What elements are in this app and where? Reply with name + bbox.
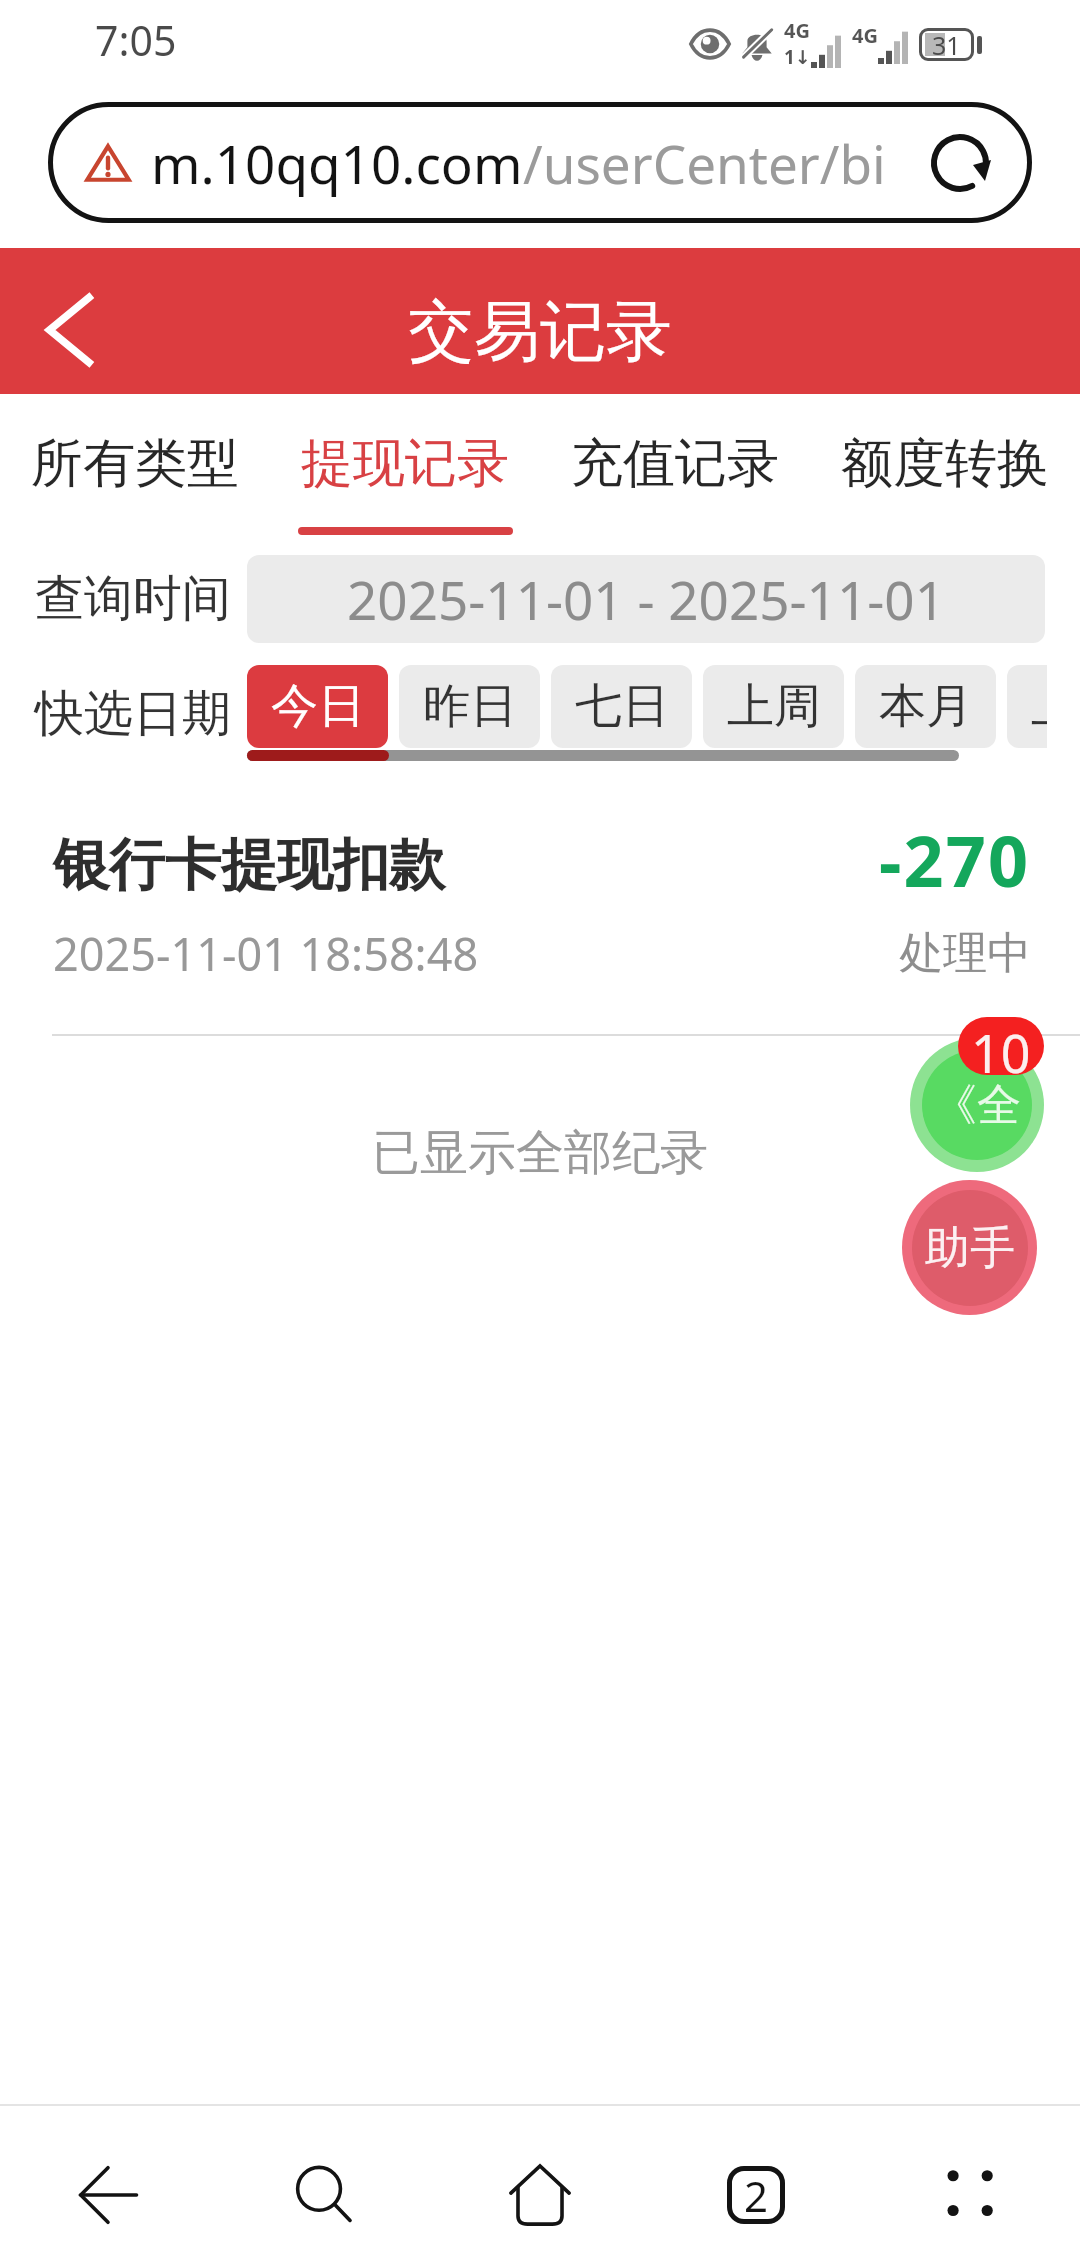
staticText: 4G	[784, 17, 810, 44]
staticText: 上周	[727, 677, 821, 736]
staticText: 所有类型	[31, 431, 239, 497]
button[interactable]: 本月	[855, 665, 996, 748]
staticText: 快选日期	[35, 683, 231, 745]
staticText: m.10qq10.com	[151, 127, 523, 199]
staticText: 今日	[271, 677, 365, 736]
staticText: 上	[1031, 677, 1047, 736]
staticText: 七日	[575, 677, 669, 736]
button[interactable]: 上周	[703, 665, 844, 748]
button[interactable]: Search	[216, 2124, 432, 2266]
staticText: 查询时间	[35, 568, 231, 630]
staticText: 7:05	[95, 12, 177, 68]
staticText: -270	[879, 812, 1031, 907]
button[interactable]: 额度转换	[810, 394, 1080, 546]
staticText: 4G	[852, 22, 878, 49]
staticText: /userCenter/bi	[523, 127, 886, 199]
staticText: 2025-11-01 - 2025-11-01	[347, 563, 945, 635]
button[interactable]: m.10qq10.com	[48, 102, 1032, 223]
button[interactable]: 上	[1007, 665, 1047, 748]
staticText: 充值记录	[571, 431, 779, 497]
staticText: 提现记录	[301, 431, 509, 497]
button[interactable]: 银行卡提现扣款	[0, 818, 1080, 984]
staticText: 已显示全部纪录	[0, 1123, 1080, 1183]
button[interactable]: Back	[43, 293, 93, 367]
staticText: 处理中	[899, 926, 1031, 981]
staticText: 2	[744, 2167, 769, 2224]
staticText: 10	[971, 1017, 1031, 1075]
button[interactable]: More	[864, 2124, 1080, 2266]
button[interactable]: 今日	[247, 665, 388, 748]
staticText: 《全	[933, 1078, 1021, 1133]
staticText: 31	[932, 28, 961, 61]
staticText: 交易记录	[408, 290, 672, 373]
button[interactable]: 充值记录	[540, 394, 810, 546]
button[interactable]: 2025-11-01 - 2025-11-01	[247, 555, 1045, 643]
staticText: 银行卡提现扣款	[53, 830, 445, 901]
staticText: 1↓	[784, 44, 811, 70]
staticText: 助手	[925, 1220, 1015, 1277]
staticText: 昨日	[423, 677, 517, 736]
staticText: 本月	[879, 677, 973, 736]
button[interactable]: 七日	[551, 665, 692, 748]
button[interactable]: 所有类型	[0, 394, 270, 546]
button[interactable]: 昨日	[399, 665, 540, 748]
button[interactable]: Home	[432, 2124, 648, 2266]
button[interactable]: 提现记录	[270, 394, 540, 546]
staticText: 2025-11-01 18:58:48	[53, 923, 479, 984]
button[interactable]: Tabs	[648, 2124, 864, 2266]
button[interactable]: 《全	[910, 1038, 1044, 1172]
staticText: 额度转换	[841, 431, 1049, 497]
button[interactable]: Reload	[922, 125, 998, 201]
button[interactable]: Back	[0, 2124, 216, 2266]
button[interactable]: 助手	[902, 1180, 1037, 1315]
